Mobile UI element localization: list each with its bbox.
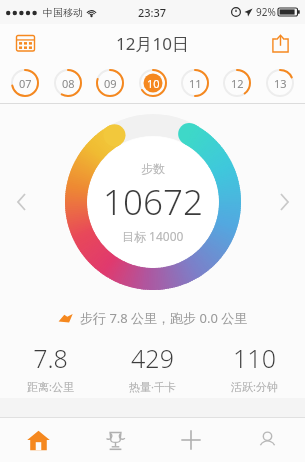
staticText: 23:37 <box>138 5 167 20</box>
staticText: 中国移动 <box>43 6 83 19</box>
staticText: 110 <box>233 341 276 375</box>
staticText: 12 <box>231 76 244 91</box>
staticText: 10672 <box>103 178 203 226</box>
staticText: 09 <box>104 76 117 91</box>
button[interactable]: 08 <box>51 66 85 100</box>
button[interactable]: 12 <box>220 66 254 100</box>
button[interactable]: Add <box>153 418 229 462</box>
staticText: 距离:公里 <box>27 379 74 394</box>
button[interactable]: 步行 7.8 公里，跑步 0.0 公里 <box>0 300 305 336</box>
button[interactable]: 13 <box>263 66 297 100</box>
button[interactable]: 110 <box>203 336 305 398</box>
staticText: 步数 <box>141 161 165 176</box>
button[interactable]: Home <box>0 418 77 462</box>
button[interactable]: 429 <box>101 336 203 398</box>
button[interactable]: Profile <box>229 418 305 462</box>
button[interactable]: 07 <box>8 66 42 100</box>
staticText: 13 <box>274 76 287 91</box>
staticText: 活跃:分钟 <box>231 379 278 394</box>
button[interactable]: Next day <box>269 187 299 217</box>
staticText: 12月10日 <box>116 32 189 55</box>
button[interactable]: Share <box>263 26 297 60</box>
button[interactable]: 10 <box>136 66 170 100</box>
button[interactable]: Previous day <box>6 187 36 217</box>
staticText: 92% <box>256 5 276 19</box>
button[interactable]: 7.8 <box>0 336 101 398</box>
button[interactable]: 11 <box>178 66 212 100</box>
staticText: 08 <box>62 76 75 91</box>
staticText: 热量·千卡 <box>129 379 176 394</box>
staticText: 07 <box>19 76 32 91</box>
staticText: 目标 14000 <box>122 228 184 244</box>
staticText: 步行 7.8 公里，跑步 0.0 公里 <box>80 309 248 327</box>
button[interactable]: Achievements <box>77 418 153 462</box>
staticText: 429 <box>131 341 174 375</box>
button[interactable]: 09 <box>93 66 127 100</box>
button[interactable]: Calendar <box>8 26 42 60</box>
staticText: 11 <box>189 76 202 91</box>
staticText: 7.8 <box>33 341 68 375</box>
staticText: 10 <box>147 76 160 91</box>
